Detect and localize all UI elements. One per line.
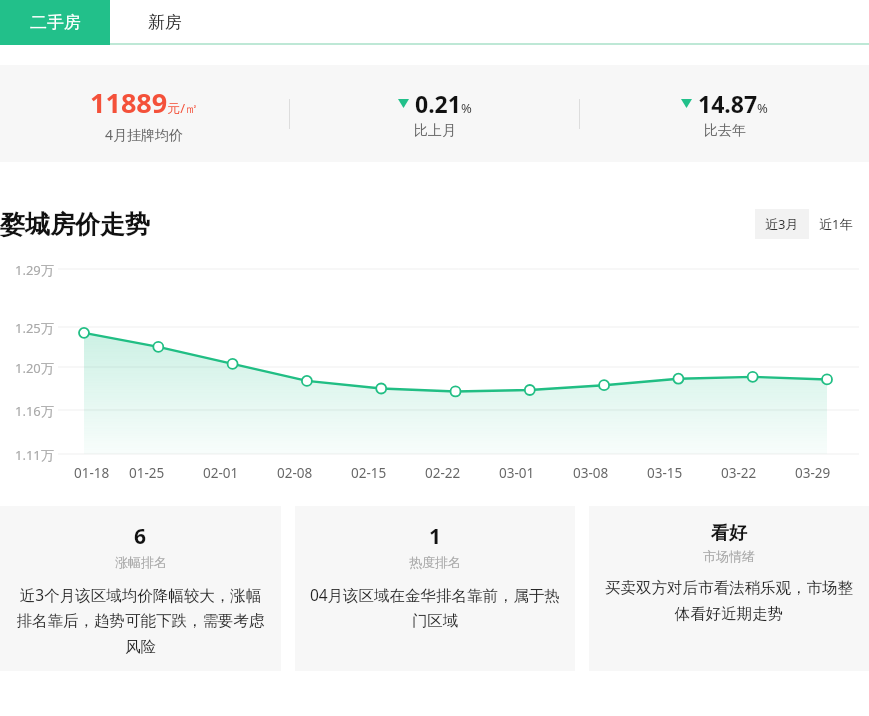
- button[interactable]: 1: [295, 506, 575, 671]
- staticText: 1.25万: [15, 319, 54, 335]
- staticText: 01-18: [74, 464, 110, 482]
- staticText: 看好: [711, 522, 747, 545]
- staticText: 0.21%: [415, 88, 472, 119]
- button[interactable]: 6: [0, 506, 281, 671]
- staticText: 11889元/㎡: [90, 84, 199, 121]
- staticText: 03-08: [573, 464, 609, 482]
- staticText: 1: [429, 522, 442, 551]
- staticText: 买卖双方对后市看法稍乐观，市场整体看好近期走势: [603, 578, 855, 624]
- staticText: 02-15: [351, 464, 387, 482]
- staticText: 近3个月该区域均价降幅较大，涨幅排名靠后，趋势可能下跌，需要考虑风险: [14, 584, 267, 657]
- staticText: 04月该区域在金华排名靠前，属于热门区域: [309, 584, 561, 631]
- staticText: 03-01: [499, 464, 535, 482]
- staticText: 14.87%: [698, 88, 768, 119]
- staticText: 市场情绪: [703, 548, 755, 564]
- staticText: 03-22: [721, 464, 757, 482]
- staticText: 03-15: [647, 464, 683, 482]
- staticText: 4月挂牌均价: [105, 125, 184, 144]
- staticText: 新房: [148, 12, 182, 33]
- button[interactable]: 近1年: [809, 209, 863, 239]
- staticText: 二手房: [30, 12, 81, 33]
- staticText: 1.11万: [15, 446, 54, 462]
- staticText: 1.16万: [15, 402, 54, 418]
- button[interactable]: 看好: [589, 506, 869, 671]
- staticText: 02-01: [203, 464, 239, 482]
- staticText: 02-08: [277, 464, 313, 482]
- staticText: 比上月: [414, 122, 456, 140]
- staticText: 比去年: [704, 122, 746, 140]
- staticText: 1.29万: [15, 261, 54, 277]
- staticText: 03-29: [795, 464, 831, 482]
- button[interactable]: 新房: [110, 0, 220, 45]
- staticText: 6: [134, 522, 147, 551]
- staticText: 1.20万: [15, 359, 54, 375]
- staticText: 01-25: [129, 464, 165, 482]
- button[interactable]: 二手房: [0, 0, 110, 45]
- staticText: 婺城房价走势: [0, 209, 150, 240]
- staticText: 近3月: [765, 215, 799, 233]
- staticText: 近1年: [819, 215, 853, 233]
- button[interactable]: 近3月: [755, 209, 809, 239]
- staticText: 热度排名: [409, 554, 461, 570]
- staticText: 涨幅排名: [115, 554, 167, 570]
- staticText: 02-22: [425, 464, 461, 482]
